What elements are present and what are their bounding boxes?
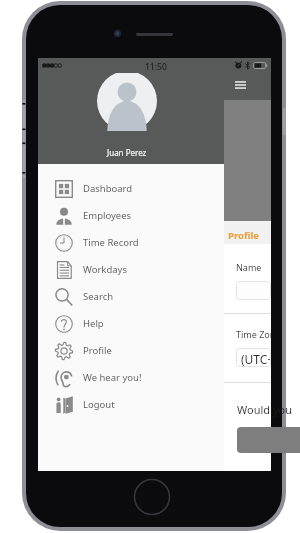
staticText: Time Record xyxy=(83,236,139,249)
staticText: Juan Perez xyxy=(107,147,147,158)
staticText: 11:50 xyxy=(145,61,167,73)
staticText: Workdays xyxy=(83,263,127,276)
button[interactable]: Dashboard xyxy=(38,175,224,202)
button[interactable]: Search xyxy=(38,283,224,310)
button[interactable] xyxy=(237,427,300,453)
staticText: Profile xyxy=(83,344,112,357)
button[interactable]: Open navigation menu xyxy=(229,74,251,96)
button[interactable]: Profile xyxy=(38,337,224,364)
button[interactable]: Time Record xyxy=(38,229,224,256)
button[interactable]: Workdays xyxy=(38,256,224,283)
staticText: Time Zone xyxy=(236,328,271,340)
staticText: Dashboard xyxy=(83,182,133,195)
button[interactable]: Employees xyxy=(38,202,224,229)
button[interactable] xyxy=(236,281,271,300)
staticText: Logout xyxy=(83,398,115,411)
staticText: Help xyxy=(83,317,104,330)
staticText: We hear you! xyxy=(83,371,142,384)
button[interactable]: We hear you! xyxy=(38,364,224,391)
staticText: Search xyxy=(83,290,114,303)
staticText: Name xyxy=(236,261,262,273)
button[interactable]: Help xyxy=(38,310,224,337)
staticText: Employees xyxy=(83,209,132,222)
staticText: Profile xyxy=(228,229,259,242)
button[interactable]: Logout xyxy=(38,391,224,418)
button[interactable]: (UTC+01:00) xyxy=(236,348,271,367)
button[interactable]: Profile xyxy=(228,229,259,242)
staticText: Would you xyxy=(237,402,292,417)
staticText: (UTC+01:00) xyxy=(241,351,271,367)
